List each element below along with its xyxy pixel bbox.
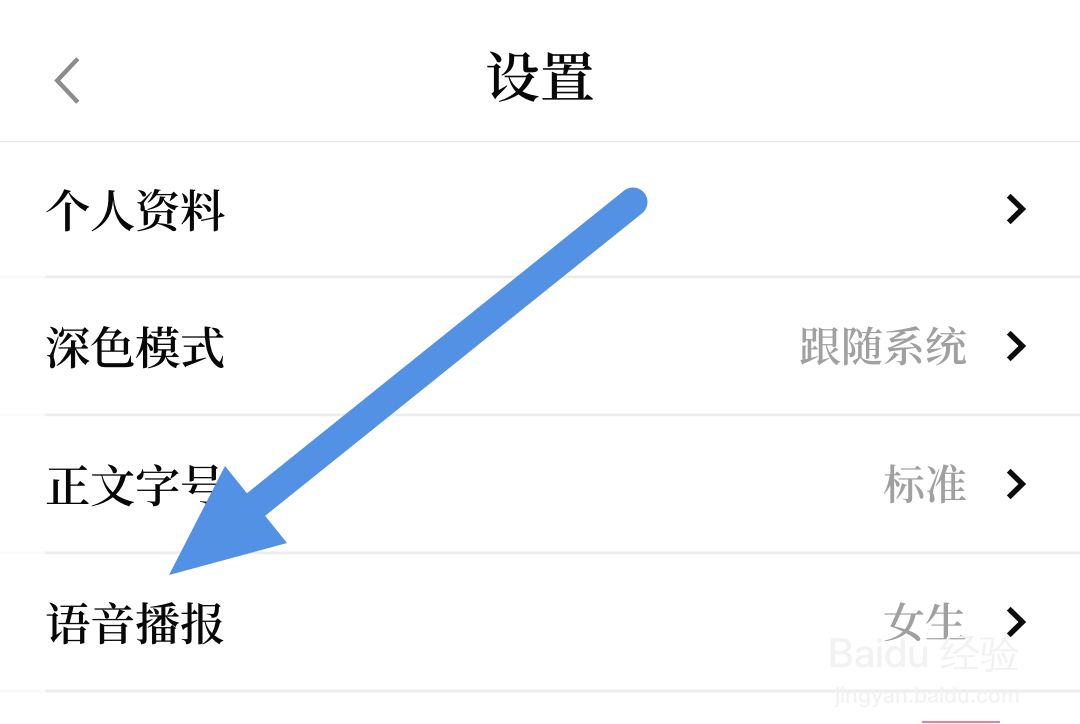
button[interactable]: 深色模式 [0,278,1080,413]
staticText: jingyan.baidu.com [835,682,1020,708]
staticText: 深色模式 [45,312,225,377]
button[interactable]: Back [0,20,120,120]
staticText: 语音播报 [45,588,225,653]
staticText: 标准 [883,451,967,512]
staticText: Baidu 经验 [828,629,1020,679]
staticText: 设置 [485,34,595,113]
staticText: 跟随系统 [799,313,967,374]
button[interactable]: 正文字号 [0,416,1080,551]
staticText: 正文字号 [45,450,225,515]
staticText: 个人资料 [45,175,225,240]
staticText: 女生 [883,589,967,650]
button[interactable]: 语音播报 [0,554,1080,689]
button[interactable]: 个人资料 [0,142,1080,275]
